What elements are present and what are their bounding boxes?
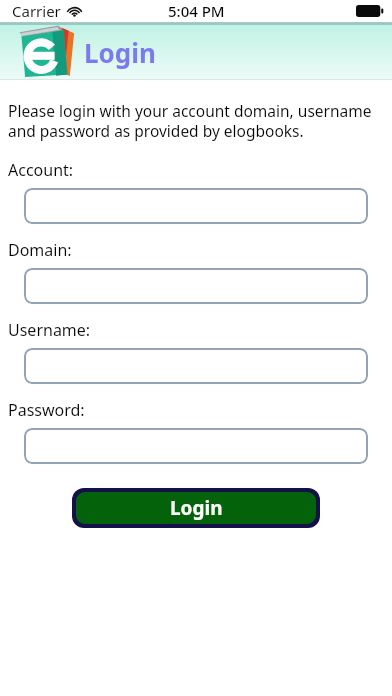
staticText: Password: [8,399,85,421]
staticText: Username: [8,319,91,341]
staticText: Please login with your account domain, u… [8,100,372,141]
staticText: Carrier [12,1,61,21]
staticText: 5:04 PM [168,1,225,21]
button[interactable] [24,188,368,224]
button[interactable]: Login [76,492,316,524]
staticText: Account: [8,159,74,181]
button[interactable] [24,348,368,384]
staticText: Login [170,495,223,521]
staticText: Domain: [8,239,72,261]
staticText: Login [84,35,156,70]
button[interactable] [24,268,368,304]
button[interactable] [24,428,368,464]
